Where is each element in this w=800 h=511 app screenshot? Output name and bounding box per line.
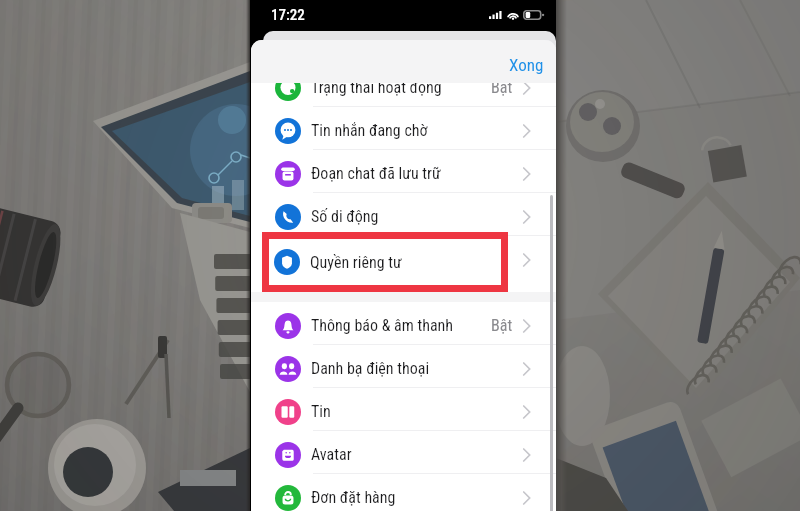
staticText: Quyền riêng tư (310, 253, 402, 272)
button[interactable]: Tin nhắn đang chờ (251, 107, 556, 150)
button[interactable]: Tin (251, 388, 556, 431)
staticText: Đơn đặt hàng (311, 488, 396, 507)
staticText: 17:22 (271, 6, 305, 24)
staticText: Tin nhắn đang chờ (311, 121, 428, 140)
button[interactable]: Đoạn chat đã lưu trữ (251, 150, 556, 193)
button[interactable]: Quyền riêng tư (269, 239, 501, 285)
staticText: Thông báo & âm thanh (311, 316, 454, 335)
staticText: Tin (311, 402, 331, 421)
staticText: Đoạn chat đã lưu trữ (311, 164, 441, 183)
staticText: Danh bạ điện thoại (311, 359, 430, 378)
staticText: Số di động (311, 207, 379, 226)
staticText: Avatar (311, 445, 352, 464)
button[interactable]: Thông báo & âm thanh (251, 302, 556, 345)
button[interactable]: Danh bạ điện thoại (251, 345, 556, 388)
button[interactable]: Xong (509, 55, 544, 75)
button[interactable]: Số di động (251, 193, 556, 236)
button[interactable]: Đơn đặt hàng (251, 474, 556, 511)
staticText: Xong (509, 55, 544, 75)
staticText: Bật (491, 316, 513, 335)
staticText: Bật (491, 78, 513, 97)
staticText: Trạng thái hoạt động (311, 78, 442, 97)
staticText: Quyền riêng tư (311, 250, 403, 269)
button[interactable]: Avatar (251, 431, 556, 474)
button[interactable]: Quyền riêng tư (251, 236, 556, 278)
button[interactable]: Trạng thái hoạt động (251, 64, 556, 107)
